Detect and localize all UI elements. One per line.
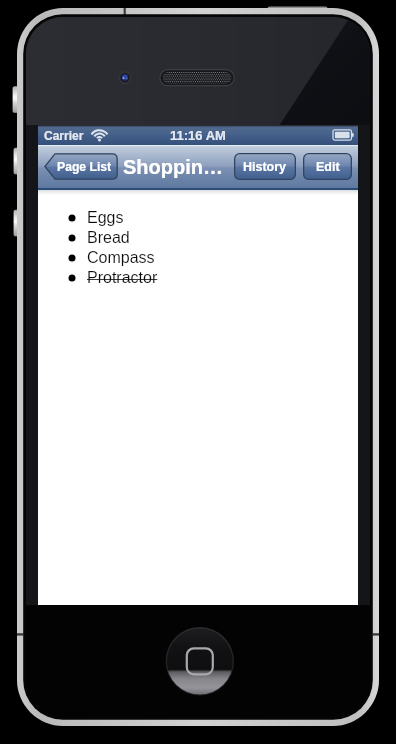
staticText: 11:16 AM xyxy=(170,128,226,143)
staticText: Eggs xyxy=(87,209,124,227)
button[interactable]: Eggs xyxy=(38,208,358,228)
staticText: Compass xyxy=(87,249,155,267)
staticText: Edit xyxy=(316,160,340,174)
staticText: History xyxy=(243,160,287,174)
staticText: Shoppin… xyxy=(123,156,223,178)
button[interactable]: History xyxy=(234,153,296,180)
staticText: Carrier xyxy=(44,129,84,142)
button[interactable]: Edit xyxy=(303,153,352,180)
button[interactable]: Compass xyxy=(38,248,358,268)
staticText: Protractor xyxy=(87,269,158,287)
staticText: Bread xyxy=(87,229,130,247)
button[interactable]: Page List xyxy=(44,153,118,180)
button[interactable]: Bread xyxy=(38,228,358,248)
staticText: Page List xyxy=(57,160,112,174)
button[interactable]: Protractor xyxy=(38,268,358,288)
